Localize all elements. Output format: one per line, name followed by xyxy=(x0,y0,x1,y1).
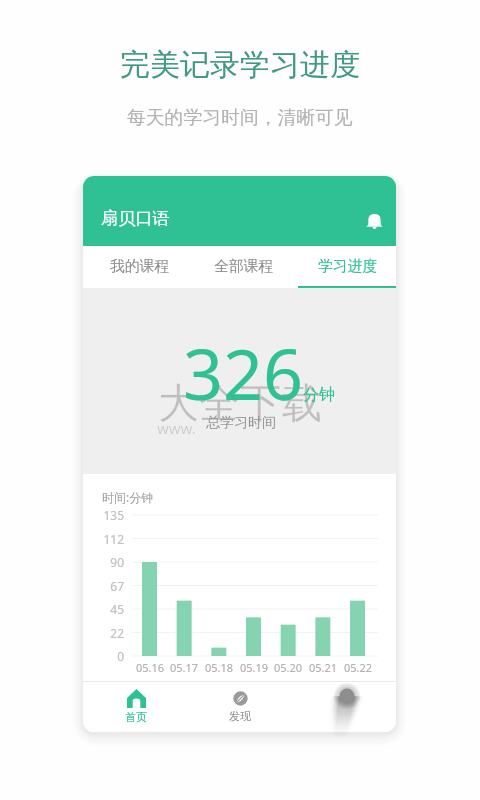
button[interactable]: 发现 xyxy=(188,681,292,732)
staticText: 扇贝口语 xyxy=(101,207,170,229)
staticText: 05.19 xyxy=(234,660,274,675)
staticText: 45 xyxy=(89,601,124,617)
staticText: 05.22 xyxy=(338,660,378,675)
staticText: 05.21 xyxy=(303,660,343,675)
staticText: www. xyxy=(157,418,196,438)
staticText: 67 xyxy=(89,578,124,594)
staticText: 首页 xyxy=(125,710,147,724)
staticText: 0 xyxy=(89,648,124,664)
staticText: 发现 xyxy=(229,709,251,723)
staticText: 总学习时间 xyxy=(206,414,276,432)
staticText: 学习进度 xyxy=(318,257,378,276)
staticText: 90 xyxy=(89,554,124,570)
staticText: 05.17 xyxy=(164,660,204,675)
staticText: 我的课程 xyxy=(110,257,170,276)
button[interactable]: 首页 xyxy=(83,681,188,732)
staticText: 每天的学习时间，清晰可见 xyxy=(127,106,353,130)
staticText: 05.20 xyxy=(268,660,308,675)
staticText: 05.18 xyxy=(199,660,239,675)
staticText: 全部课程 xyxy=(214,257,274,276)
staticText: 大全下载 xyxy=(158,378,322,430)
staticText: 135 xyxy=(89,507,124,523)
staticText: 112 xyxy=(89,531,124,547)
staticText: 05.16 xyxy=(130,660,170,675)
button[interactable]: 我的课程 xyxy=(83,246,188,288)
staticText: 分钟 xyxy=(303,385,335,405)
button[interactable]: Notifications xyxy=(361,208,387,234)
staticText: 326 xyxy=(183,325,304,420)
button[interactable]: 学习进度 xyxy=(292,246,396,288)
staticText: 完美记录学习进度 xyxy=(120,46,360,84)
staticText: 22 xyxy=(89,625,124,641)
button[interactable]: 全部课程 xyxy=(188,246,292,288)
staticText: 时间:分钟 xyxy=(102,489,154,505)
